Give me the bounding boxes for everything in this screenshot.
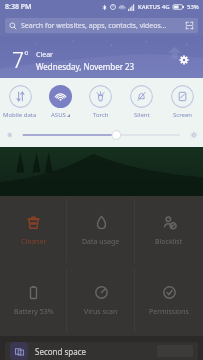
button[interactable]: Battery 53%: [0, 266, 67, 336]
button[interactable]: Mobile data: [0, 84, 40, 119]
staticText: Cleaner: [21, 237, 47, 247]
button[interactable]: ASUS: [40, 84, 80, 119]
staticText: Search for websites, apps, contacts, vid…: [21, 21, 182, 31]
staticText: Data usage: [82, 237, 120, 247]
button[interactable]: Torch: [80, 84, 121, 119]
staticText: Silent: [134, 111, 150, 119]
staticText: Second space: [35, 346, 87, 357]
button[interactable]: [0, 128, 203, 142]
staticText: Torch: [93, 111, 109, 119]
button[interactable]: Second space: [5, 342, 198, 360]
staticText: 8:38 PM: [5, 2, 32, 12]
button[interactable]: Data usage: [67, 196, 135, 266]
button[interactable]: Cleaner: [0, 196, 67, 266]
staticText: Clear: [36, 50, 53, 60]
staticText: Permissions: [149, 307, 189, 317]
staticText: Wednesday, November 23: [36, 61, 135, 72]
button[interactable]: Virus scan: [67, 266, 135, 336]
staticText: Blocklist: [155, 237, 183, 247]
staticText: Screen: [173, 111, 193, 119]
button[interactable]: Screen: [162, 84, 203, 119]
staticText: Virus scan: [84, 307, 118, 317]
button[interactable]: Permissions: [135, 266, 203, 336]
button[interactable]: Silent: [121, 84, 162, 119]
button[interactable]: Scan: [185, 21, 194, 30]
staticText: KAKTUS 4G: [138, 3, 170, 11]
staticText: Battery 53%: [14, 307, 54, 317]
button[interactable]: Blocklist: [135, 196, 203, 266]
staticText: °: [24, 47, 29, 62]
button[interactable]: Search for websites, apps, contacts, vid…: [5, 18, 198, 33]
staticText: 7: [12, 46, 24, 75]
staticText: ASUS: [51, 111, 66, 119]
staticText: 53%: [187, 3, 199, 11]
staticText: Mobile data: [3, 111, 37, 119]
button[interactable]: Weather settings: [176, 52, 192, 68]
